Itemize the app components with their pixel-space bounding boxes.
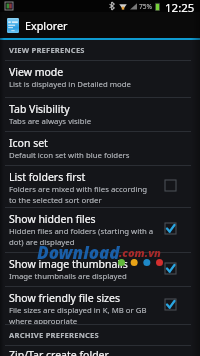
staticText: Download — [37, 241, 120, 264]
staticText: .com.vn — [119, 245, 161, 260]
staticText: Folders are mixed with files according — [9, 184, 148, 195]
staticText: Show image thumbnails — [9, 257, 128, 271]
other: Toggle — [165, 299, 176, 310]
other: Toggle — [165, 180, 176, 191]
staticText: List is displayed in Detailed mode — [9, 79, 131, 90]
staticText: Image thumbnails are displayed — [9, 271, 127, 282]
staticText: to the selected sort order — [9, 195, 102, 206]
staticText: File sizes are displayed in K, MB or GB — [9, 305, 147, 316]
staticText: Zip/Tar create folder — [9, 348, 109, 356]
staticText: Icon set — [9, 136, 48, 150]
other: Toggle — [165, 223, 176, 234]
other: Toggle — [165, 263, 176, 274]
button[interactable]: Show hidden files — [0, 208, 200, 253]
staticText: where appropriate — [9, 316, 78, 324]
button[interactable]: Show friendly file sizes — [0, 287, 200, 325]
button[interactable]: Show image thumbnails — [0, 253, 200, 287]
button[interactable]: View mode — [0, 61, 200, 98]
button[interactable]: Tab Visibility — [0, 98, 200, 132]
staticText: ARCHIVE PREFERENCES — [9, 330, 99, 340]
staticText: dot) are displayed — [9, 237, 75, 248]
other: App icon — [7, 18, 19, 33]
staticText: List folders first — [9, 170, 86, 184]
staticText: VIEW PREFERENCES — [9, 45, 85, 55]
staticText: Hidden files and folders (starting with … — [9, 226, 154, 237]
button[interactable]: Zip/Tar create folder — [0, 346, 200, 356]
staticText: View mode — [9, 65, 64, 79]
staticText: Tabs are always visible — [9, 116, 92, 127]
button[interactable]: List folders first — [0, 166, 200, 208]
staticText: 12:25 — [165, 0, 195, 12]
staticText: Explorer — [25, 18, 68, 33]
staticText: Show hidden files — [9, 212, 96, 226]
staticText: Tab Visibility — [9, 102, 70, 116]
button[interactable]: Icon set — [0, 132, 200, 166]
staticText: Default icon set with blue folders — [9, 150, 130, 161]
staticText: 75% — [139, 2, 153, 11]
staticText: Show friendly file sizes — [9, 291, 121, 305]
button[interactable]: App icon — [0, 12, 200, 38]
